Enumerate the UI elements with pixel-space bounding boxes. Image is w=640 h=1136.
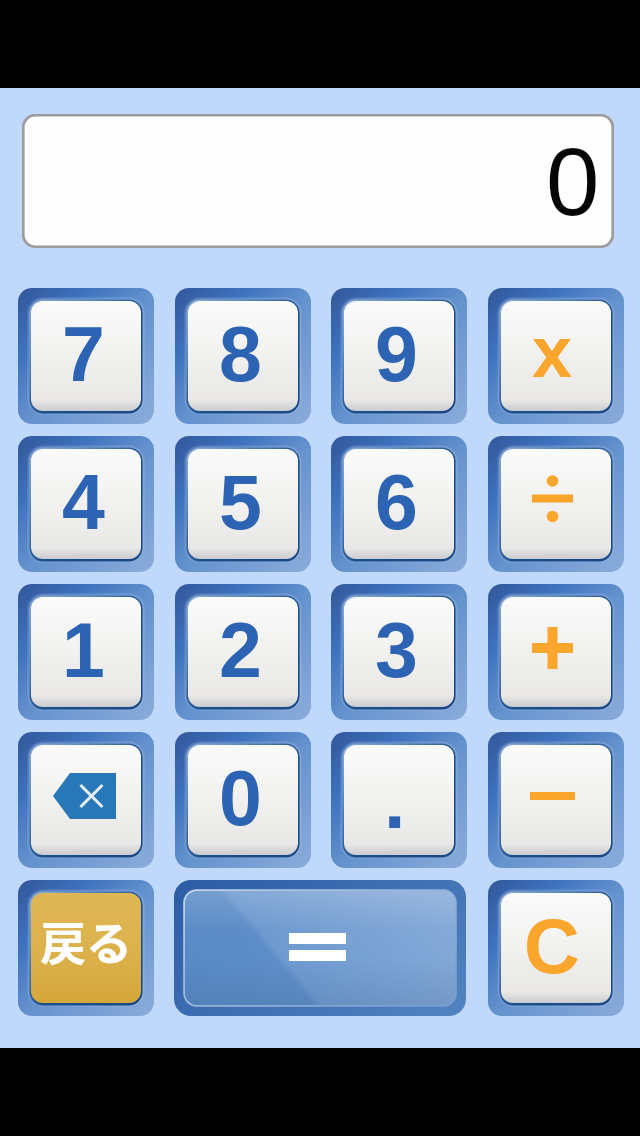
button[interactable]: Clear [488,880,624,1016]
staticText: 8 [219,311,262,397]
staticText: x [532,312,573,392]
staticText: 3 [375,607,418,693]
staticText: 5 [219,459,262,545]
button[interactable]: Multiply [488,288,624,424]
button[interactable]: 3 [331,584,467,720]
staticText: 戻る [40,907,132,974]
button[interactable]: Minus [488,732,624,868]
button[interactable]: 8 [175,288,311,424]
button[interactable]: 4 [18,436,154,572]
button[interactable]: Divide [488,436,624,572]
staticText: 0 [546,128,600,235]
button[interactable]: 1 [18,584,154,720]
staticText: . [384,758,406,844]
button[interactable]: Equals [174,880,466,1016]
button[interactable]: 7 [18,288,154,424]
button[interactable]: . [331,732,467,868]
button[interactable]: 6 [331,436,467,572]
staticText: 1 [62,607,105,693]
staticText: 2 [219,607,262,693]
staticText: C [524,903,580,989]
button[interactable]: 0 [175,732,311,868]
button[interactable]: 2 [175,584,311,720]
staticText: 9 [375,311,418,397]
button[interactable]: Plus [488,584,624,720]
button[interactable]: Backspace [18,732,154,868]
button[interactable]: 9 [331,288,467,424]
staticText: 7 [62,311,105,397]
staticText: 4 [62,459,105,545]
button[interactable]: 5 [175,436,311,572]
button[interactable]: Back [18,880,154,1016]
staticText: 0 [219,755,262,841]
staticText: 6 [375,459,418,545]
